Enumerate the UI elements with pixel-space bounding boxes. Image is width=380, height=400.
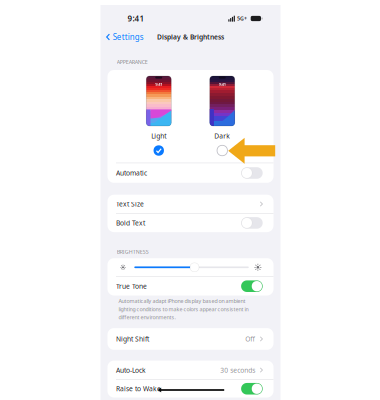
staticText: True Tone xyxy=(116,282,147,291)
button[interactable]: 9:41 xyxy=(203,70,241,163)
button[interactable]: Automatic xyxy=(107,163,273,183)
button[interactable]: 9:41 xyxy=(140,70,178,163)
staticText: Automatically adapt iPhone display based… xyxy=(118,297,245,305)
staticText: Settings xyxy=(113,32,144,42)
staticText: Text Size xyxy=(116,200,144,208)
staticText: BRIGHTNESS xyxy=(117,248,149,255)
button[interactable]: Text Size xyxy=(107,195,273,213)
staticText: Off xyxy=(245,334,255,343)
staticText: Automatic xyxy=(116,169,147,177)
staticText: 9:41 xyxy=(219,82,226,87)
staticText: Bold Text xyxy=(116,218,145,227)
staticText: Raise to Wake xyxy=(116,384,161,393)
button[interactable]: Settings xyxy=(100,26,148,47)
button[interactable]: Auto-Lock xyxy=(107,361,273,379)
staticText: 5G+ xyxy=(237,15,247,22)
staticText: Night Shift xyxy=(116,334,149,343)
staticText: Dark xyxy=(214,131,230,140)
staticText: 30 seconds xyxy=(220,366,255,374)
staticText: Display & Brightness xyxy=(157,33,224,41)
staticText: Light xyxy=(151,131,166,140)
staticText: 9:41 xyxy=(127,13,144,24)
staticText: lighting conditions to make colors appea… xyxy=(118,306,248,313)
staticText: different environments. xyxy=(118,314,175,321)
staticText: Auto-Lock xyxy=(116,366,146,374)
button[interactable]: Raise to Wake xyxy=(107,380,273,397)
button[interactable]: Bold Text xyxy=(107,214,273,232)
button[interactable]: True Tone xyxy=(107,277,273,295)
button[interactable]: Night Shift xyxy=(107,328,273,350)
staticText: APPEARANCE xyxy=(117,58,148,65)
staticText: 9:41 xyxy=(155,82,162,87)
